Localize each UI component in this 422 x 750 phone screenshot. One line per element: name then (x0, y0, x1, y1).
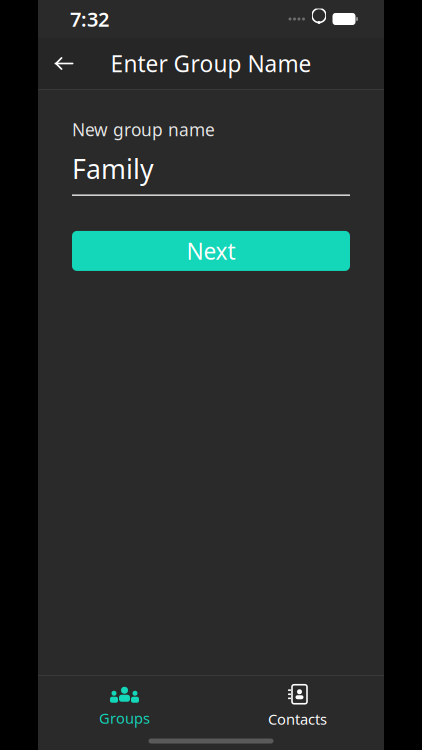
button[interactable]: Contacts (211, 682, 384, 730)
staticText: Family (72, 151, 154, 186)
staticText: Groups (99, 708, 150, 728)
staticText: 7:32 (70, 6, 109, 32)
button[interactable]: Back (42, 41, 86, 85)
staticText: Next (186, 236, 235, 266)
staticText: Contacts (268, 709, 327, 729)
staticText: New group name (72, 118, 215, 141)
button[interactable]: Groups (38, 682, 211, 730)
button[interactable]: Next (72, 231, 350, 271)
staticText: Enter Group Name (110, 48, 311, 78)
